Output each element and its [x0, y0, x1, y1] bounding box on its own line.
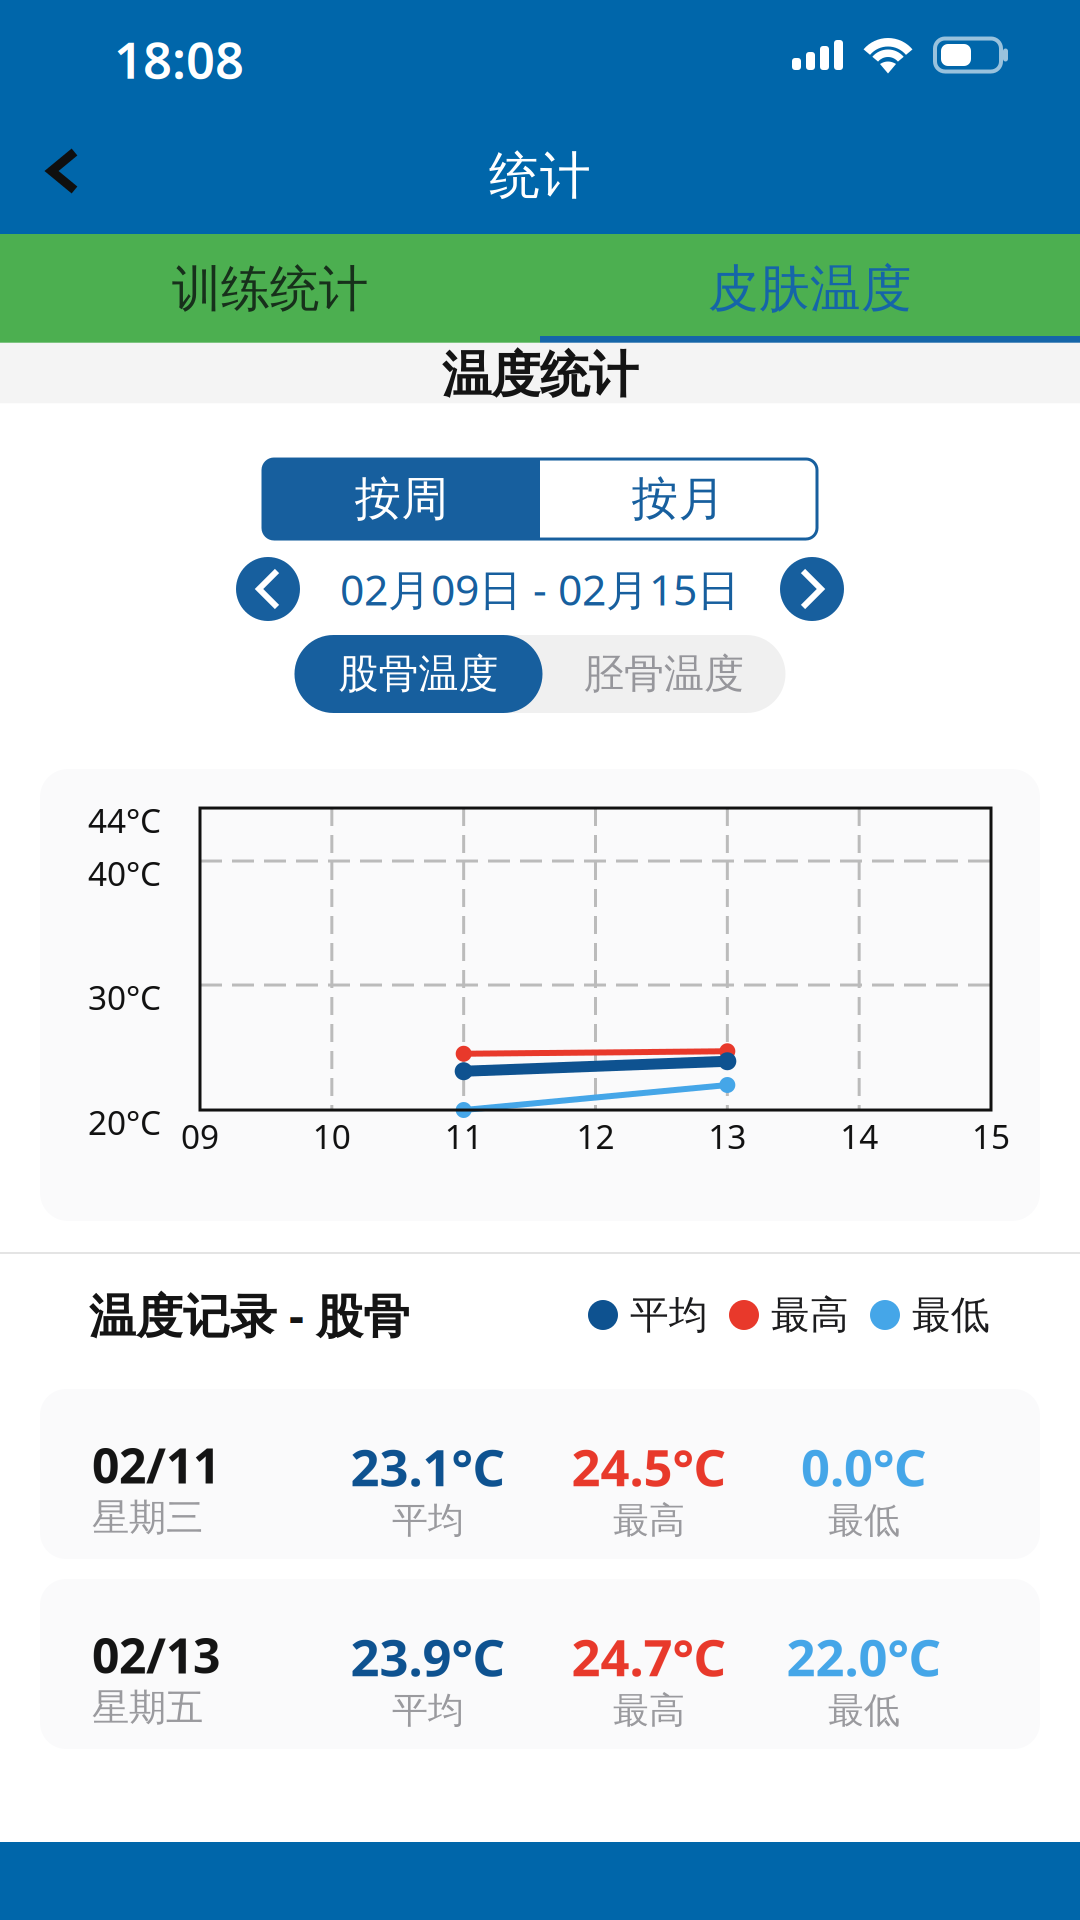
staticText: 胫骨温度 [584, 649, 744, 698]
staticText: 温度记录 - 股骨 [89, 1284, 410, 1346]
staticText: 09 [181, 1114, 219, 1158]
staticText: 24.7°C [571, 1623, 726, 1690]
staticText: 02/11 [92, 1433, 220, 1497]
staticText: 训练统计 [172, 259, 368, 319]
button[interactable]: 02/13 [40, 1579, 1040, 1749]
button[interactable]: 按周 [263, 459, 540, 539]
staticText: 20°C [88, 1100, 161, 1144]
button[interactable]: 训练统计 [0, 233, 540, 345]
staticText: 40°C [88, 851, 161, 895]
staticText: 23.9°C [350, 1623, 505, 1690]
button[interactable]: Previous week [236, 557, 300, 621]
staticText: 15 [972, 1114, 1010, 1158]
staticText: 02/13 [92, 1623, 220, 1687]
staticText: 星期五 [92, 1685, 203, 1731]
staticText: 平均 [630, 1291, 708, 1339]
staticText: 平均 [392, 1688, 464, 1732]
staticText: 最低 [828, 1498, 900, 1542]
staticText: 02月09日 - 02月15日 [340, 561, 740, 617]
button[interactable]: 胫骨温度 [542, 635, 785, 713]
staticText: 10 [313, 1114, 351, 1158]
staticText: 11 [445, 1114, 483, 1158]
staticText: 23.1°C [350, 1433, 505, 1500]
staticText: 股骨温度 [338, 649, 498, 698]
staticText: 44°C [88, 798, 161, 842]
staticText: 统计 [489, 145, 591, 207]
staticText: 按周 [354, 470, 448, 528]
button[interactable]: 按月 [540, 459, 817, 539]
staticText: 30°C [88, 975, 161, 1019]
staticText: 22.0°C [786, 1623, 941, 1690]
staticText: 皮肤温度 [708, 258, 912, 320]
button[interactable]: Next week [780, 557, 844, 621]
staticText: 0.0°C [801, 1433, 927, 1500]
staticText: 14 [840, 1114, 878, 1158]
staticText: 最低 [912, 1291, 990, 1339]
button[interactable]: 股骨温度 [294, 635, 542, 713]
staticText: 12 [576, 1114, 614, 1158]
staticText: 13 [708, 1114, 746, 1158]
staticText: 最低 [828, 1688, 900, 1732]
button[interactable]: 02/11 [40, 1389, 1040, 1559]
staticText: 平均 [392, 1498, 464, 1542]
staticText: 按月 [631, 470, 725, 528]
button[interactable]: Back [15, 120, 111, 232]
staticText: 24.5°C [571, 1433, 726, 1500]
staticText: 18:08 [114, 25, 244, 93]
staticText: 最高 [613, 1498, 685, 1542]
button[interactable]: 皮肤温度 [540, 233, 1080, 345]
staticText: 星期三 [92, 1495, 203, 1541]
staticText: 温度统计 [442, 345, 638, 405]
staticText: 最高 [771, 1291, 849, 1339]
staticText: 最高 [613, 1688, 685, 1732]
